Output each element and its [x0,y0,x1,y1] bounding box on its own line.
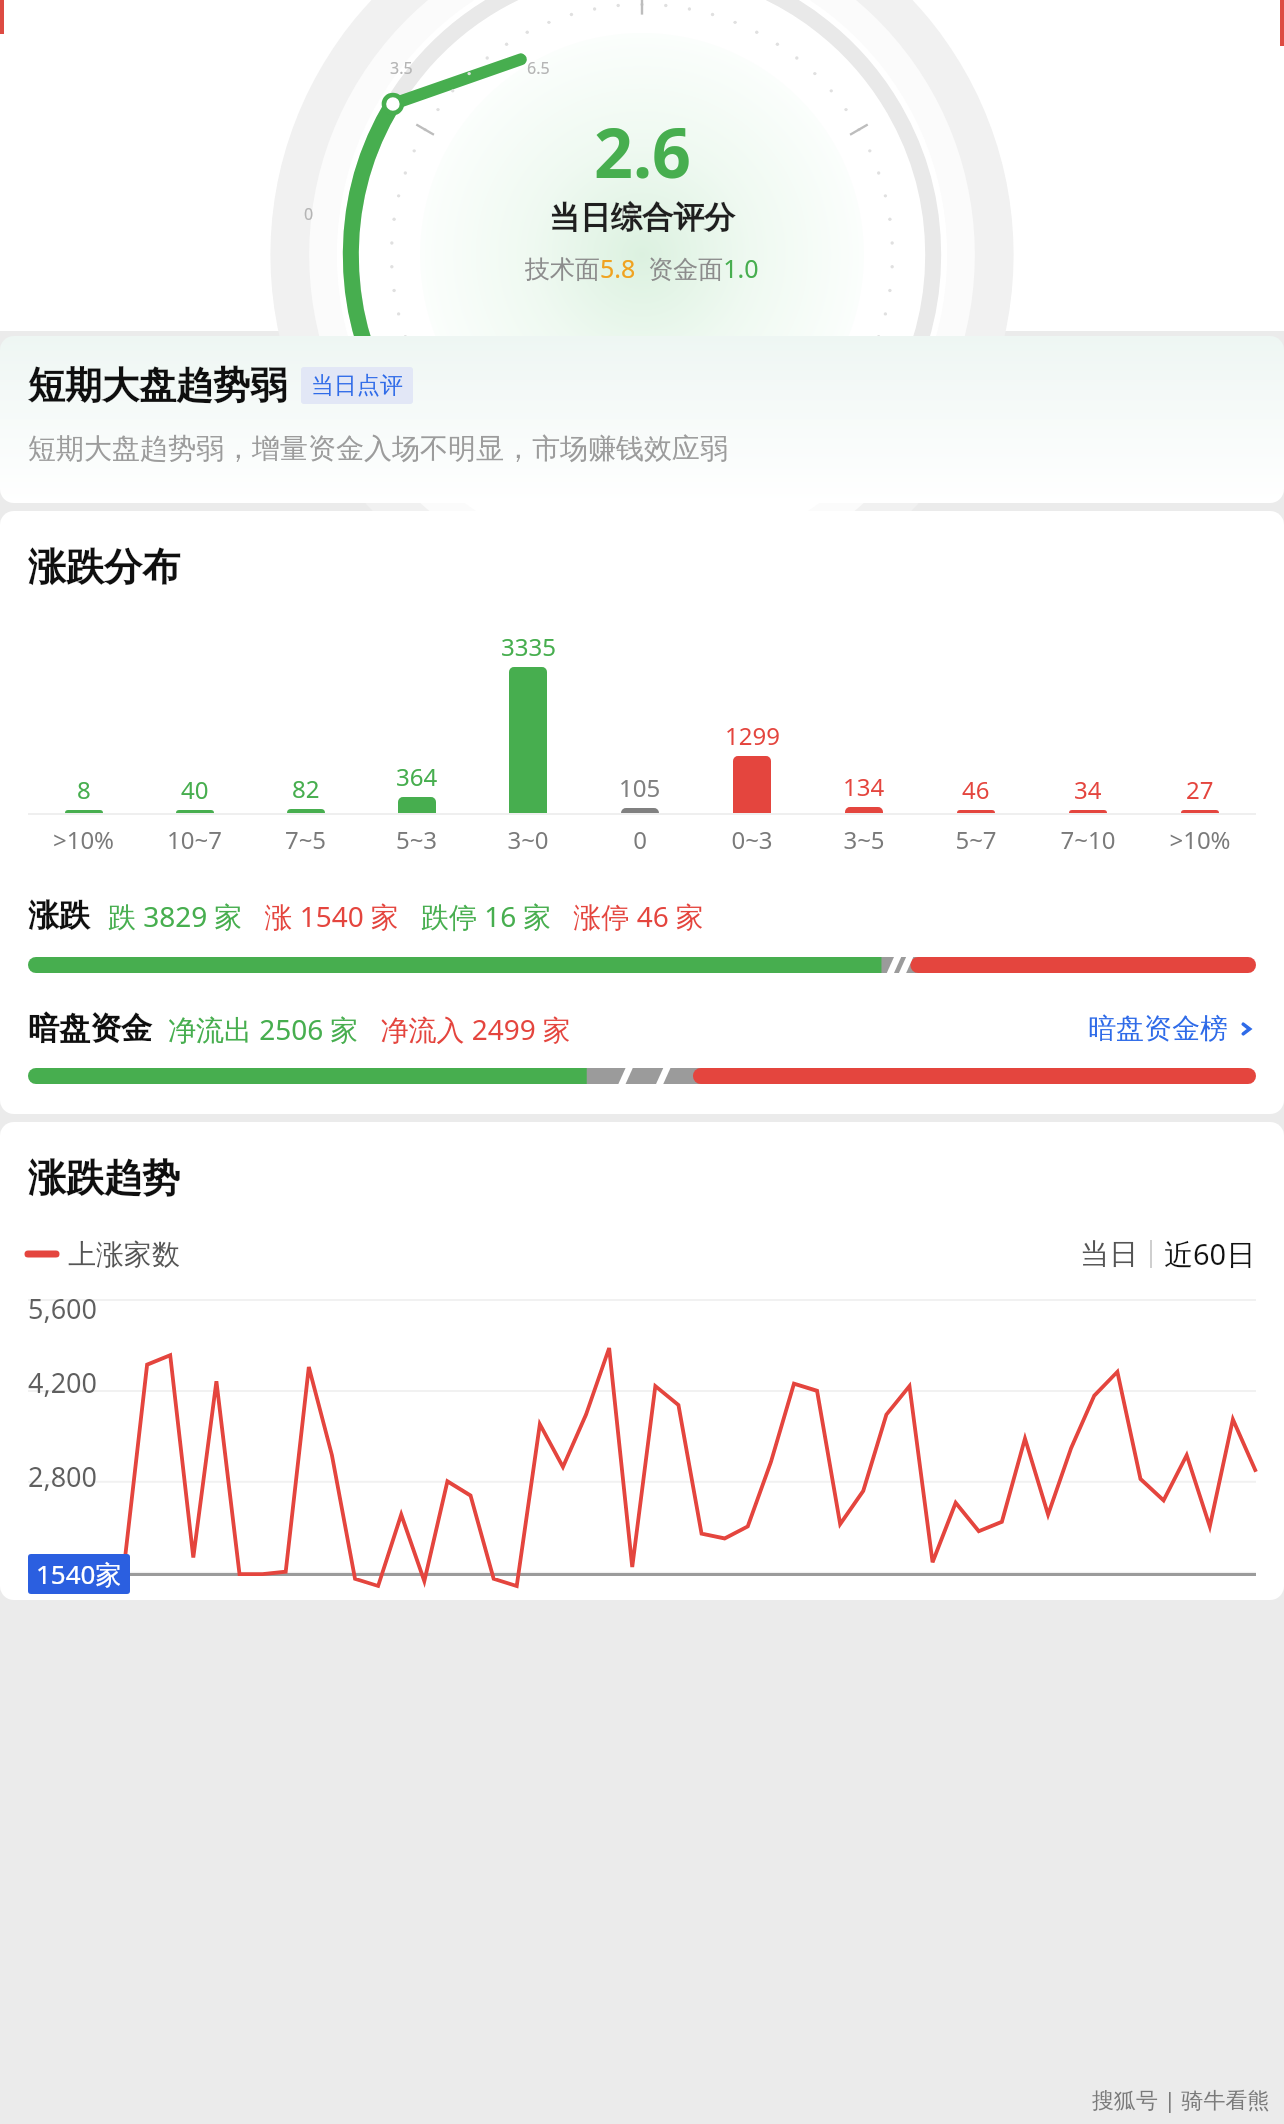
staticText: 40 [181,773,209,806]
staticText: 34 [1074,773,1102,806]
staticText: 当日 [1080,1236,1138,1273]
staticText: 短期大盘趋势弱 [28,362,287,409]
staticText: 净流出 2506 家 净流入 2499 家 [168,1010,572,1048]
staticText: 0 [584,823,696,856]
button[interactable]: 近60日 [1164,1234,1256,1274]
staticText: 5,600 [28,1290,98,1327]
staticText: 5~3 [361,823,472,856]
staticText: 6.5 [527,57,550,79]
staticText: 上涨家数 [68,1237,180,1272]
staticText: 2.6 [594,105,691,198]
staticText: 0~3 [696,823,808,856]
staticText: >10% [28,823,139,856]
staticText: 8 [77,773,91,806]
staticText: 1540家 [36,1556,122,1592]
staticText: 当日综合评分 [549,198,735,237]
staticText: 82 [292,772,320,805]
staticText: 0 [304,203,314,225]
staticText: 27 [1186,773,1214,806]
staticText: 暗盘资金榜 [1088,1011,1228,1046]
staticText: 134 [843,770,885,803]
staticText: 2,800 [28,1458,98,1495]
button[interactable]: 短期大盘趋势弱 [0,336,1284,503]
staticText: 近60日 [1164,1234,1256,1274]
staticText: 3.5 [390,57,413,79]
staticText: 涨跌趋势 [28,1154,180,1202]
button[interactable]: 暗盘资金榜 [1088,1011,1256,1046]
staticText: 技术面5.8 资金面1.0 [525,251,759,285]
staticText: 46 [962,773,990,806]
button[interactable]: 当日 [1080,1236,1138,1273]
staticText: >10% [1144,823,1256,856]
staticText: 105 [619,771,661,804]
staticText: 当日点评 [311,371,403,400]
staticText: 364 [396,760,438,793]
staticText: 7~10 [1032,823,1144,856]
staticText: 涨跌分布 [28,543,180,591]
staticText: 跌 3829 家 涨 1540 家 跌停 16 家 涨停 46 家 [108,897,704,935]
staticText: 3~5 [808,823,920,856]
staticText: 3~0 [472,823,584,856]
staticText: 短期大盘趋势弱，增量资金入场不明显，市场赚钱效应弱 [28,431,728,466]
staticText: 3335 [501,630,556,663]
staticText: 4,200 [28,1364,98,1401]
other: 暗盘资金榜 [1236,1019,1256,1039]
staticText: 搜狐号 | 骑牛看熊 [1092,2084,1270,2114]
staticText: 涨跌 [28,896,90,935]
staticText: 暗盘资金 [28,1009,152,1048]
staticText: 10~7 [139,823,250,856]
staticText: 10 [618,203,637,225]
staticText: 1299 [725,719,780,752]
staticText: 5~7 [920,823,1032,856]
staticText: 7~5 [250,823,361,856]
